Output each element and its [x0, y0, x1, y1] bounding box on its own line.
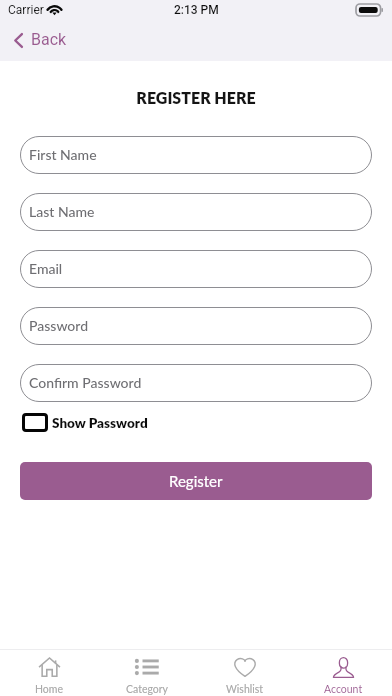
button[interactable]: Account	[294, 650, 392, 693]
staticText: Carrier	[8, 3, 44, 17]
button[interactable]: Confirm Password	[20, 364, 372, 402]
button[interactable]: Last Name	[20, 193, 372, 231]
button[interactable]: Back	[8, 26, 73, 55]
button[interactable]: Wishlist	[196, 650, 294, 693]
button[interactable]: First Name	[20, 136, 372, 174]
staticText: 2:13 PM	[174, 3, 219, 17]
staticText: REGISTER HERE	[0, 88, 392, 107]
staticText: Last Name	[29, 203, 95, 220]
button[interactable]: Category	[98, 650, 196, 693]
staticText: Home	[35, 683, 63, 696]
staticText: Show Password	[52, 415, 148, 431]
button[interactable]: Email	[20, 250, 372, 288]
other: Wishlist	[233, 657, 257, 677]
button[interactable]: Password	[20, 307, 372, 345]
staticText: Back	[31, 30, 67, 49]
staticText: Category	[126, 683, 169, 696]
button[interactable]: Register	[20, 462, 372, 500]
staticText: Register	[169, 472, 223, 490]
button[interactable]: Show Password	[20, 410, 148, 435]
staticText: Email	[29, 260, 63, 277]
other: Category	[135, 657, 160, 677]
staticText: Account	[324, 683, 363, 696]
other: Account	[333, 657, 354, 678]
staticText: First Name	[29, 146, 97, 163]
button[interactable]: Home	[0, 650, 98, 693]
staticText: Confirm Password	[29, 374, 142, 391]
staticText: Wishlist	[226, 683, 264, 696]
staticText: Password	[29, 317, 89, 334]
other: Home	[39, 657, 60, 677]
